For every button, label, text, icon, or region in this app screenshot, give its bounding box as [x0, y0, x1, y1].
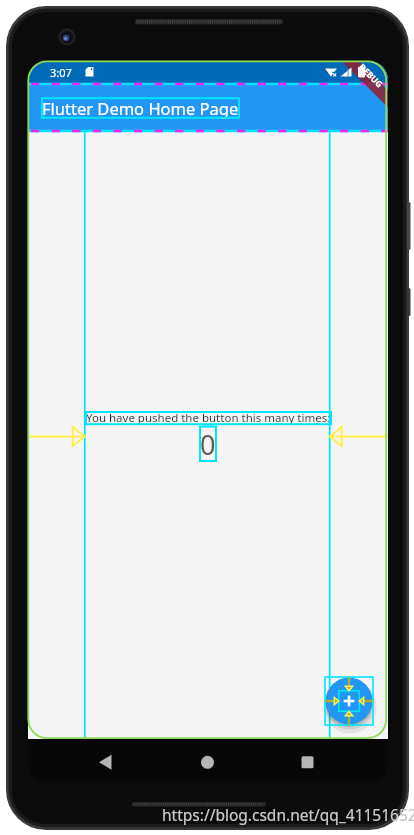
staticText: 3:07: [50, 65, 72, 80]
staticText: Flutter Demo Home Page: [42, 97, 239, 119]
button[interactable]: Home: [138, 739, 238, 783]
staticText: You have pushed the button this many tim…: [86, 410, 331, 426]
button[interactable]: Increment: [325, 677, 373, 725]
staticText: DEBUG: [356, 61, 386, 91]
staticText: 0: [200, 426, 216, 463]
button[interactable]: Recents: [238, 739, 388, 783]
staticText: https://blog.csdn.net/qq_41151652: [162, 804, 414, 825]
button[interactable]: Back: [28, 739, 138, 783]
